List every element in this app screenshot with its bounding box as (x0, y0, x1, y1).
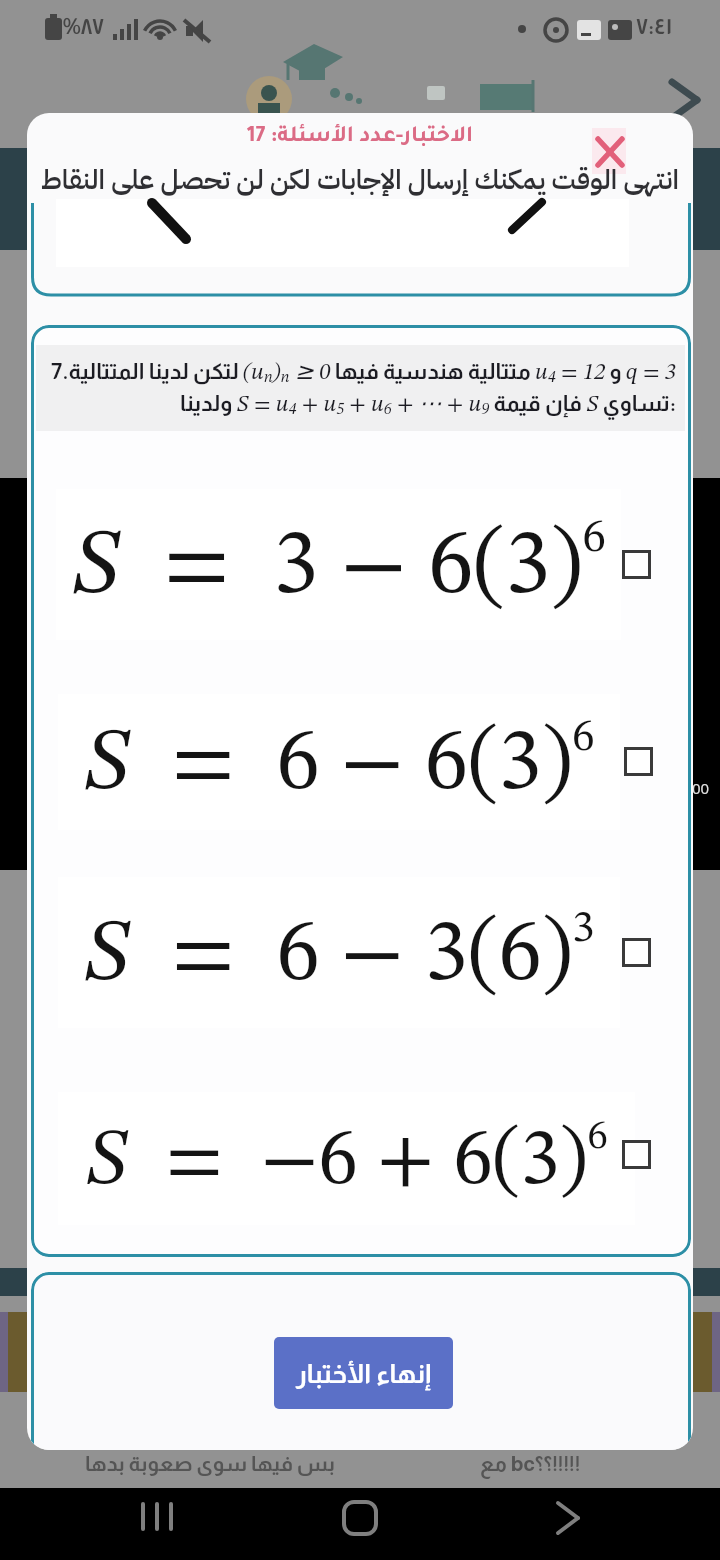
staticText: ولدينا S = u4 + u5 + u6 + ⋯ + u9 فإن قيم… (45, 390, 676, 418)
button[interactable] (622, 938, 651, 967)
button[interactable] (240, 1488, 480, 1560)
staticText: الاختبار-عدد الأسئلة: 17 (27, 126, 693, 149)
staticText: مع bc؟؟!!!!! (480, 1452, 581, 1475)
staticText: S = 6 − 6(3)6 (83, 715, 595, 809)
button[interactable] (624, 747, 653, 776)
button[interactable] (0, 1488, 240, 1560)
staticText: S = 6 − 3(6)3 (83, 906, 595, 1000)
staticText: S = 3 − 6(3)6 (71, 515, 606, 614)
staticText: إنهاء الأختبار (296, 1359, 432, 1388)
button[interactable]: إنهاء الأختبار (274, 1337, 453, 1409)
button[interactable] (592, 128, 626, 174)
button[interactable]: S = 6 − 6(3)6 (58, 694, 620, 830)
staticText: %٨٧ (63, 14, 105, 39)
staticText: 7.لتكن لدينا المتتالية (un)n ≥ 0 متتالية… (45, 358, 676, 386)
button[interactable]: S = 3 − 6(3)6 (56, 489, 621, 640)
button[interactable] (480, 1488, 720, 1560)
button[interactable] (622, 1140, 651, 1169)
button[interactable]: S = −6 + 6(3)6 (58, 1092, 635, 1225)
staticText: بس فيها سوى صعوبة بدها (85, 1452, 335, 1475)
button[interactable]: S = 6 − 3(6)3 (58, 877, 620, 1028)
staticText: ٧:٤١ (636, 14, 673, 39)
button[interactable] (622, 550, 651, 579)
staticText: انتهى الوقت يمكنك إرسال الإجابات لكن لن … (27, 160, 693, 201)
staticText: S = −6 + 6(3)6 (85, 1116, 608, 1202)
staticText: 00 (692, 778, 710, 798)
